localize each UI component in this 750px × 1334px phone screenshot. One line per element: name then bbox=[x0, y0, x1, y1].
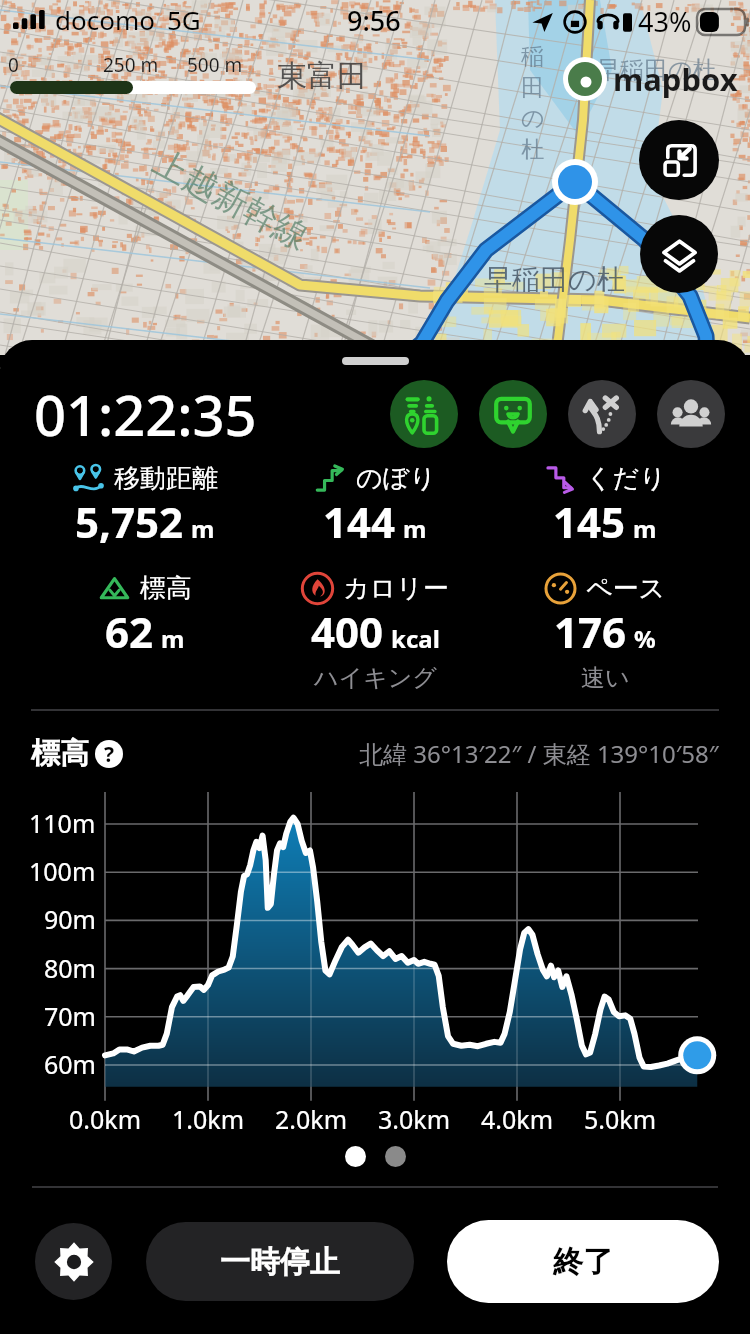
staticText: % bbox=[634, 622, 656, 655]
staticText: 5G bbox=[167, 2, 201, 37]
button[interactable]: Help bbox=[95, 740, 123, 768]
staticText: 90m bbox=[44, 902, 96, 936]
staticText: 80m bbox=[44, 951, 96, 985]
button[interactable]: Map layers bbox=[640, 215, 718, 293]
staticText: 43% bbox=[638, 3, 692, 40]
staticText: 上越新幹線 bbox=[146, 140, 316, 259]
staticText: 60m bbox=[44, 1047, 96, 1081]
staticText: 5,752 bbox=[75, 493, 184, 550]
button[interactable]: Collapse map bbox=[639, 120, 719, 200]
staticText: kcal bbox=[391, 622, 440, 655]
staticText: 500 m bbox=[187, 52, 243, 78]
staticText: 0.0km bbox=[69, 1102, 142, 1136]
staticText: くだり bbox=[586, 462, 666, 495]
staticText: docomo bbox=[55, 2, 155, 37]
button[interactable]: 一時停止 bbox=[146, 1222, 414, 1301]
staticText: m bbox=[403, 512, 427, 545]
staticText: 速い bbox=[581, 663, 630, 693]
staticText: 東富田 bbox=[277, 57, 367, 95]
staticText: 5.0km bbox=[584, 1102, 657, 1136]
staticText: m bbox=[191, 512, 215, 545]
staticText: 0 bbox=[8, 52, 19, 78]
staticText: 110m bbox=[29, 806, 96, 840]
staticText: 2.0km bbox=[275, 1102, 348, 1136]
staticText: 62 bbox=[105, 603, 154, 660]
staticText: 終了 bbox=[553, 1243, 613, 1281]
staticText: 145 bbox=[553, 493, 626, 550]
staticText: mapbox bbox=[613, 58, 738, 100]
staticText: 3.0km bbox=[378, 1102, 451, 1136]
button[interactable]: Share location bbox=[390, 380, 458, 448]
staticText: 100m bbox=[29, 854, 96, 888]
staticText: 01:22:35 bbox=[34, 376, 257, 452]
staticText: m bbox=[633, 512, 657, 545]
staticText: ハイキング bbox=[314, 663, 437, 693]
staticText: 250 m bbox=[103, 52, 159, 78]
staticText: m bbox=[161, 622, 185, 655]
button[interactable]: Members bbox=[657, 380, 725, 448]
staticText: 早稲田の杜 bbox=[596, 55, 717, 85]
staticText: ペース bbox=[586, 572, 666, 605]
button[interactable]: 終了 bbox=[447, 1220, 719, 1303]
staticText: 400 bbox=[311, 603, 384, 660]
button[interactable]: Messages bbox=[479, 380, 547, 448]
button[interactable]: Route bbox=[568, 380, 636, 448]
staticText: 北緯 36°13′22″ / 東経 139°10′58″ bbox=[359, 737, 719, 770]
staticText: 標高 bbox=[140, 572, 192, 605]
staticText: 176 bbox=[554, 603, 627, 660]
staticText: 早稲田の杜 bbox=[484, 262, 625, 297]
button[interactable]: Settings bbox=[35, 1223, 112, 1300]
staticText: 移動距離 bbox=[114, 462, 218, 495]
staticText: 稲 田 の 杜 bbox=[521, 42, 545, 164]
staticText: ? bbox=[104, 740, 115, 768]
staticText: 標高 bbox=[31, 735, 89, 772]
staticText: 9:56 bbox=[347, 2, 401, 39]
staticText: カロリー bbox=[343, 572, 449, 605]
staticText: のぼり bbox=[356, 462, 436, 495]
staticText: 70m bbox=[44, 999, 96, 1033]
staticText: 4.0km bbox=[481, 1102, 554, 1136]
staticText: 144 bbox=[323, 493, 396, 550]
staticText: 1.0km bbox=[172, 1102, 245, 1136]
staticText: 一時停止 bbox=[220, 1243, 340, 1281]
